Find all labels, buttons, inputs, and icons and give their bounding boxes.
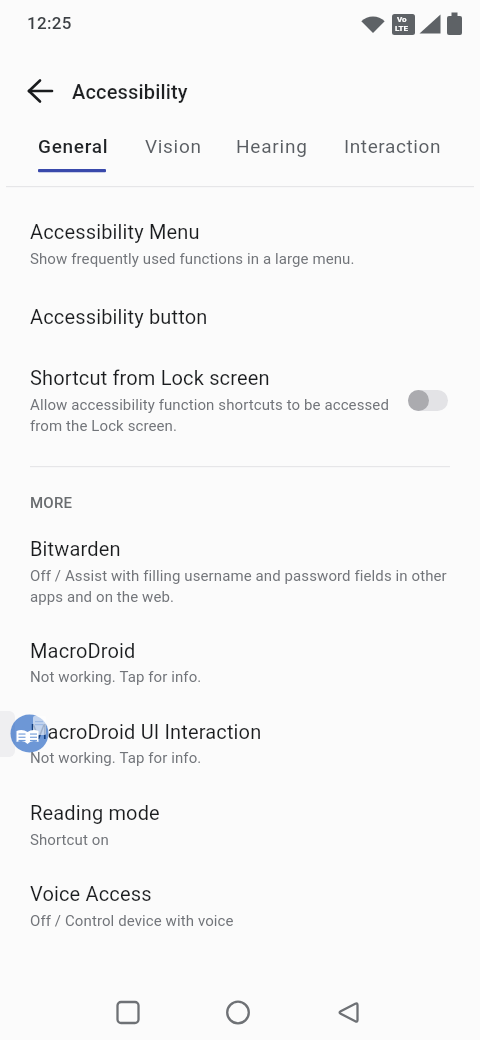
button[interactable]: Shortcut from Lock screen bbox=[0, 350, 480, 455]
button[interactable] bbox=[408, 390, 448, 411]
staticText: Accessibility Menu bbox=[30, 220, 200, 243]
staticText: MacroDroid UI Interaction bbox=[30, 720, 262, 743]
button[interactable] bbox=[318, 985, 378, 1040]
button[interactable] bbox=[330, 125, 457, 186]
staticText: Show frequently used functions in a larg… bbox=[30, 250, 355, 268]
staticText: Vision bbox=[145, 135, 202, 157]
staticText: Interaction bbox=[344, 135, 442, 157]
button[interactable] bbox=[20, 125, 124, 186]
staticText: Accessibility bbox=[72, 80, 188, 103]
button[interactable]: MacroDroid UI Interaction bbox=[0, 705, 480, 785]
button[interactable]: Reading mode bbox=[0, 785, 480, 865]
staticText: Not working. Tap for info. bbox=[30, 749, 202, 767]
button[interactable] bbox=[130, 125, 220, 186]
staticText: MORE bbox=[30, 494, 73, 512]
staticText: Shortcut from Lock screen bbox=[30, 366, 270, 389]
staticText: General bbox=[38, 135, 109, 157]
button[interactable]: Voice Access bbox=[0, 865, 480, 945]
staticText: Shortcut on bbox=[30, 831, 109, 849]
staticText: Off / Control device with voice bbox=[30, 912, 234, 930]
button[interactable]: MacroDroid bbox=[0, 625, 480, 705]
staticText: Off / Assist with filling username and p… bbox=[30, 567, 447, 605]
button[interactable] bbox=[16, 67, 64, 115]
staticText: 12:25 bbox=[27, 13, 72, 33]
staticText: Accessibility button bbox=[30, 305, 208, 328]
button[interactable]: Accessibility Menu bbox=[0, 200, 480, 290]
staticText: Voice Access bbox=[30, 882, 152, 905]
button[interactable] bbox=[0, 711, 50, 757]
staticText: Reading mode bbox=[30, 801, 160, 824]
staticText: Allow accessibility function shortcuts t… bbox=[30, 396, 389, 434]
staticText: Not working. Tap for info. bbox=[30, 668, 202, 686]
button[interactable]: Accessibility button bbox=[0, 290, 480, 350]
button[interactable]: Bitwarden bbox=[0, 520, 480, 625]
button[interactable] bbox=[208, 985, 268, 1040]
staticText: MacroDroid bbox=[30, 639, 136, 662]
staticText: Vo bbox=[397, 15, 407, 24]
staticText: Hearing bbox=[236, 135, 308, 157]
staticText: Bitwarden bbox=[30, 537, 121, 560]
button[interactable] bbox=[222, 125, 322, 186]
button[interactable] bbox=[98, 985, 158, 1040]
staticText: LTE bbox=[395, 24, 408, 33]
